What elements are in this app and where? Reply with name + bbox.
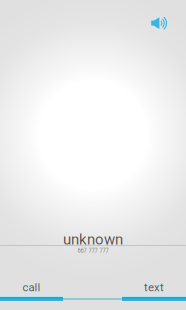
button[interactable]: text	[122, 274, 186, 301]
button[interactable]: call	[0, 274, 63, 301]
staticText: unknown	[63, 231, 123, 248]
button[interactable]: Speaker	[141, 10, 186, 37]
staticText: text	[144, 281, 164, 294]
staticText: call	[22, 281, 40, 294]
staticText: 667 777 777	[77, 247, 108, 254]
